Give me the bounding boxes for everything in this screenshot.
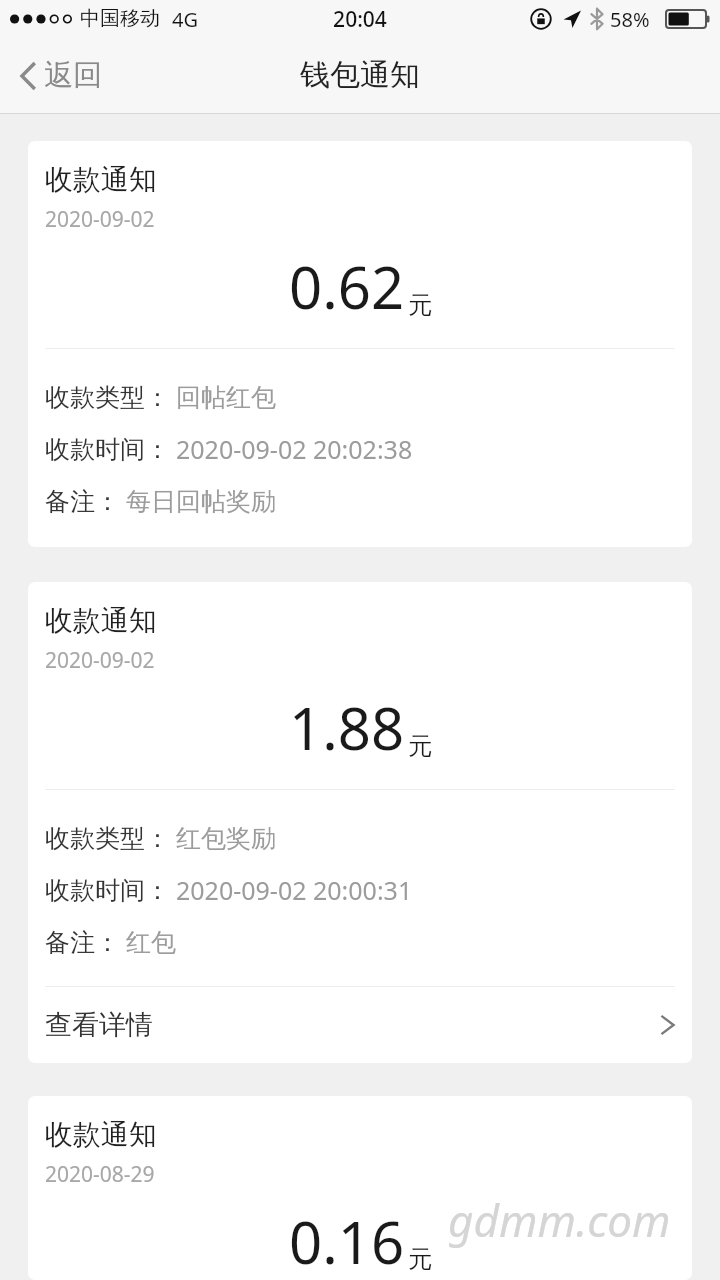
staticText: 备注： [45, 927, 120, 958]
staticText: 收款时间： [45, 434, 170, 465]
staticText: 4G [172, 6, 198, 33]
staticText: 2020-09-02 [45, 205, 155, 234]
staticText: 每日回帖奖励 [126, 486, 276, 517]
staticText: 0.16 [289, 1202, 405, 1280]
staticText: 0.62 [289, 247, 405, 326]
button[interactable]: 收款通知 [28, 141, 692, 547]
staticText: 收款类型： [45, 382, 170, 413]
staticText: 返回 [44, 57, 102, 94]
staticText: 元 [408, 290, 432, 320]
staticText: 收款通知 [45, 162, 157, 197]
staticText: 1.88 [289, 688, 405, 767]
button[interactable]: 返回 [14, 49, 108, 102]
button[interactable]: 查看详情 [45, 987, 675, 1063]
staticText: 收款类型： [45, 823, 170, 854]
staticText: 2020-09-02 20:02:38 [176, 432, 413, 466]
button[interactable]: 收款通知 [28, 582, 692, 1063]
staticText: 回帖红包 [176, 382, 276, 413]
staticText: 收款时间： [45, 875, 170, 906]
staticText: 元 [408, 1244, 432, 1274]
staticText: 中国移动 [80, 6, 160, 31]
staticText: 收款通知 [45, 603, 157, 638]
staticText: 58% [610, 6, 650, 33]
staticText: 2020-08-29 [45, 1160, 155, 1189]
staticText: 红包奖励 [176, 823, 276, 854]
staticText: gdmm.com [448, 1190, 671, 1250]
staticText: 钱包通知 [300, 56, 420, 94]
staticText: 查看详情 [45, 1008, 153, 1042]
staticText: 备注： [45, 486, 120, 517]
button[interactable]: 收款通知 [28, 1096, 692, 1280]
staticText: 2020-09-02 20:00:31 [176, 873, 413, 907]
staticText: 收款通知 [45, 1117, 157, 1152]
staticText: 2020-09-02 [45, 646, 155, 675]
staticText: 红包 [126, 927, 176, 958]
other: 查看详情 [661, 1015, 675, 1035]
staticText: 元 [408, 731, 432, 761]
staticText: 20:04 [0, 5, 720, 34]
